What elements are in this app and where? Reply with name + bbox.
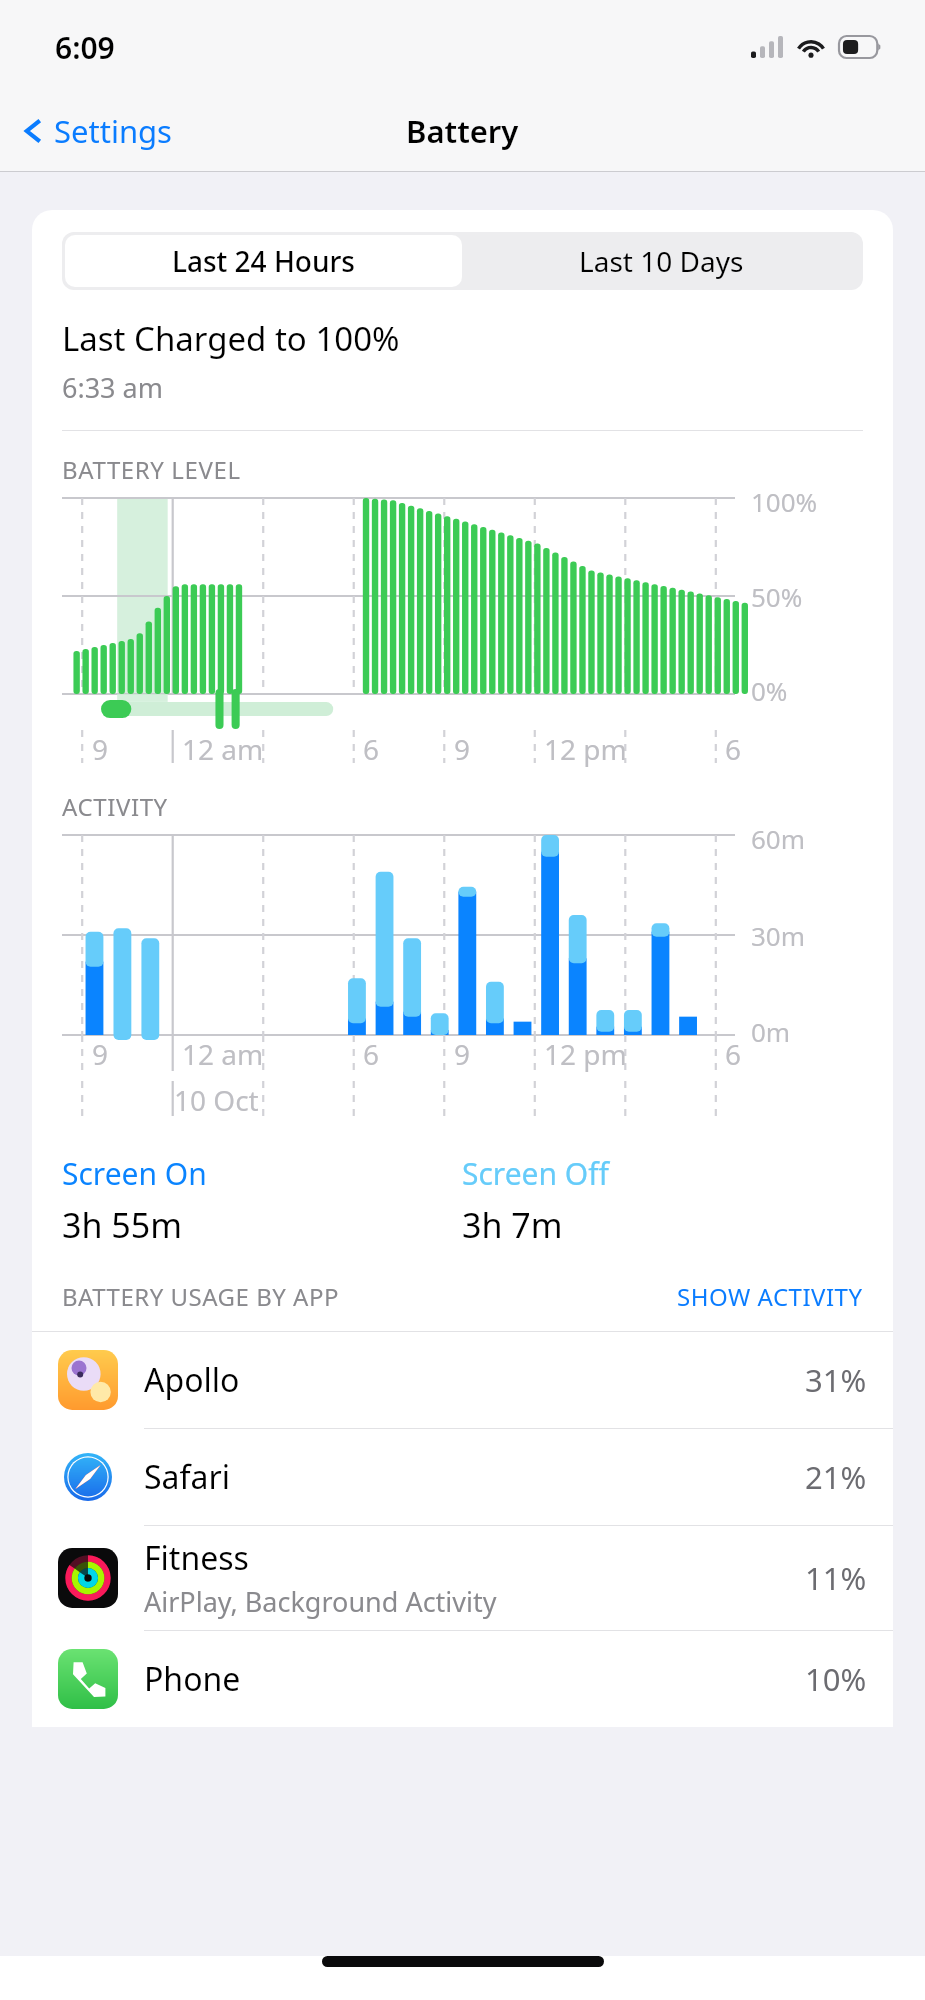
staticText: SHOW ACTIVITY [677,1280,863,1313]
button[interactable]: SHOW ACTIVITY [677,1280,863,1313]
staticText: Screen Off [462,1153,609,1194]
staticText: 100% [751,484,818,519]
staticText: 60m [751,821,806,856]
button[interactable]: Apollo [32,1332,893,1428]
staticText: ACTIVITY [62,790,168,823]
staticText: 6:33 am [62,369,163,406]
button[interactable]: Safari [32,1429,893,1525]
staticText: 0m [751,1014,791,1049]
staticText: Apollo [144,1358,240,1402]
staticText: 30m [751,918,806,953]
staticText: Phone [144,1657,241,1701]
button[interactable]: Last 24 Hours [65,235,462,287]
staticText: Fitness [144,1536,249,1580]
staticText: Last 10 Days [579,242,744,280]
staticText: 9 [454,1035,471,1073]
staticText: Battery [406,110,519,152]
staticText: 6 [363,1035,380,1073]
staticText: 50% [751,579,803,614]
staticText: 9 [454,730,471,768]
staticText: Safari [144,1455,230,1499]
staticText: 6 [725,1035,742,1073]
staticText: 12 am [182,730,264,768]
staticText: 10% [805,1658,867,1700]
staticText: Last 24 Hours [172,242,355,280]
button[interactable]: Phone [32,1631,893,1727]
button[interactable]: Last 10 Days [462,235,860,287]
staticText: 31% [805,1359,867,1401]
staticText: 12 am [182,1035,264,1073]
staticText: 6 [725,730,742,768]
staticText: Last Charged to 100% [62,316,400,361]
staticText: AirPlay, Background Activity [144,1583,497,1620]
staticText: Settings [54,110,172,152]
staticText: Screen On [62,1153,207,1194]
staticText: 9 [92,730,109,768]
staticText: BATTERY USAGE BY APP [62,1280,339,1313]
staticText: 3h 7m [462,1202,563,1248]
button[interactable]: Fitness [32,1526,893,1630]
staticText: 10 Oct [174,1081,259,1119]
staticText: 0% [751,673,788,708]
button[interactable]: Settings [16,102,176,160]
staticText: BATTERY LEVEL [62,453,241,486]
staticText: 11% [805,1557,867,1599]
staticText: 3h 55m [62,1202,182,1248]
staticText: 9 [92,1035,109,1073]
staticText: 6 [363,730,380,768]
staticText: 21% [805,1456,867,1498]
staticText: 12 pm [544,730,627,768]
staticText: 12 pm [544,1035,627,1073]
staticText: 6:09 [55,27,115,68]
